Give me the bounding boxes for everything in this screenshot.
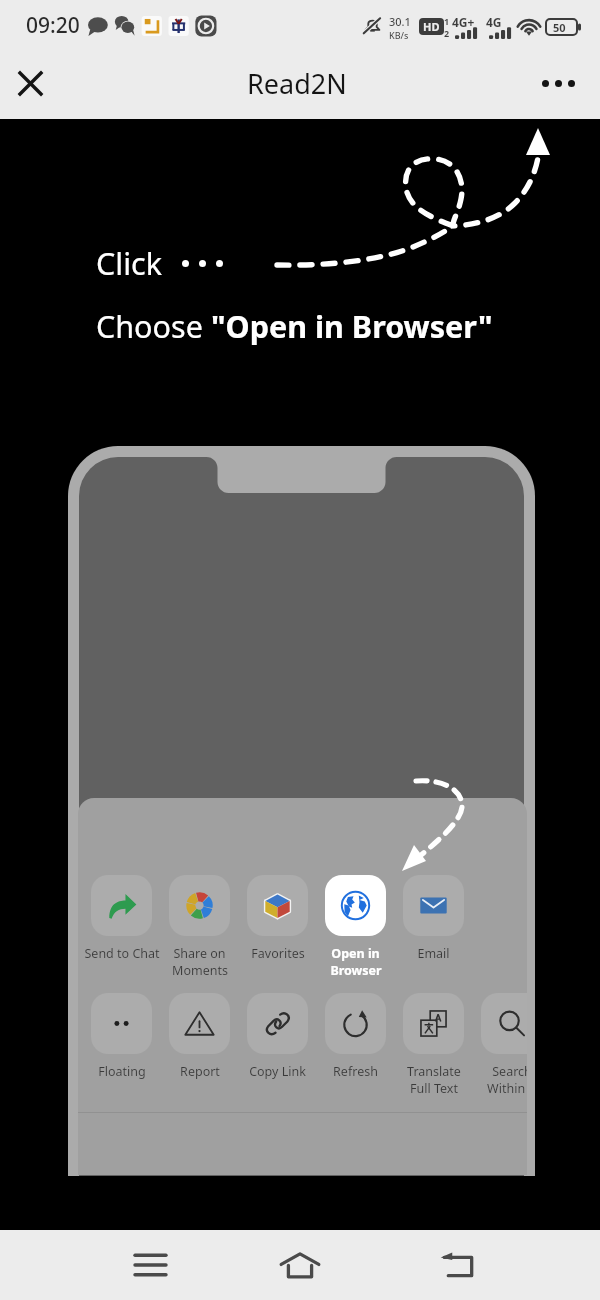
staticText: Open in	[331, 945, 380, 962]
button[interactable]	[481, 993, 527, 1054]
button[interactable]	[169, 875, 230, 936]
button[interactable]: Close	[6, 59, 54, 107]
staticText: HD	[423, 19, 440, 34]
staticText: 1	[444, 15, 450, 27]
button[interactable]: Recents	[121, 1236, 179, 1294]
staticText: Moments	[172, 962, 228, 979]
staticText: Share on	[173, 945, 226, 962]
staticText: 50	[553, 20, 566, 35]
staticText: Favorites	[251, 945, 305, 962]
staticText: Floating	[98, 1063, 146, 1080]
staticText: Click	[96, 242, 162, 284]
button[interactable]	[91, 993, 152, 1054]
staticText: Send to Chat	[84, 945, 160, 962]
button[interactable]	[247, 875, 308, 936]
button[interactable]	[325, 993, 386, 1054]
staticText: 2	[444, 27, 450, 39]
staticText: "Open in Browser"	[211, 305, 493, 347]
button[interactable]	[325, 875, 386, 936]
button[interactable]	[247, 993, 308, 1054]
staticText: Report	[180, 1063, 220, 1080]
staticText: Search	[492, 1063, 527, 1080]
staticText: KB/s	[389, 29, 409, 41]
staticText: Copy Link	[249, 1063, 306, 1080]
staticText: Email	[417, 945, 450, 962]
staticText: 4G+	[452, 14, 475, 30]
button[interactable]	[169, 993, 230, 1054]
button[interactable]: Home	[271, 1236, 329, 1294]
staticText: 30.1	[389, 14, 411, 29]
button[interactable]: Back	[429, 1236, 487, 1294]
button[interactable]	[403, 875, 464, 936]
staticText: Browser	[330, 962, 382, 979]
button[interactable]	[91, 875, 152, 936]
staticText: Full Text	[410, 1080, 458, 1097]
button[interactable]	[403, 993, 464, 1054]
staticText: Choose	[96, 305, 211, 347]
staticText: Within P	[487, 1080, 527, 1097]
staticText: Refresh	[333, 1063, 378, 1080]
staticText: Read2N	[247, 65, 347, 102]
staticText: 4G	[486, 14, 502, 30]
staticText: 09:20	[26, 11, 80, 40]
button[interactable]: More options	[534, 59, 582, 107]
staticText: Translate	[407, 1063, 461, 1080]
